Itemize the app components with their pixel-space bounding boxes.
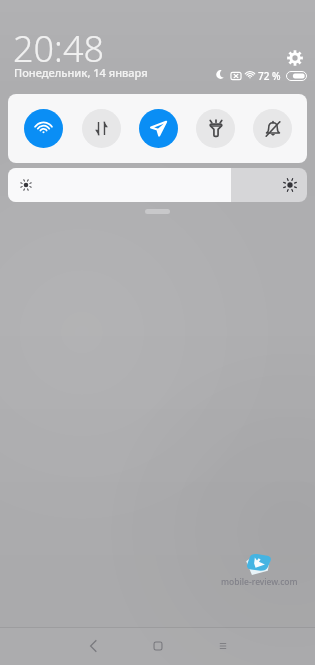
staticText: 72 % (258, 69, 281, 83)
button[interactable]: Brightness (8, 168, 307, 202)
button[interactable]: Recent apps (211, 631, 235, 661)
button[interactable]: Tile (187, 94, 244, 163)
button[interactable]: Home (146, 631, 170, 661)
staticText: Понедельник, 14 января (14, 65, 148, 80)
button[interactable]: Settings (283, 46, 307, 70)
button[interactable]: Tile (14, 94, 72, 163)
button[interactable]: Tile (72, 94, 130, 163)
button[interactable]: Tile (244, 94, 301, 163)
button[interactable]: Back (81, 631, 105, 661)
staticText: 20:48 (13, 24, 105, 73)
button[interactable]: Tile (130, 94, 187, 163)
staticText: mobile-review.com (221, 576, 298, 588)
